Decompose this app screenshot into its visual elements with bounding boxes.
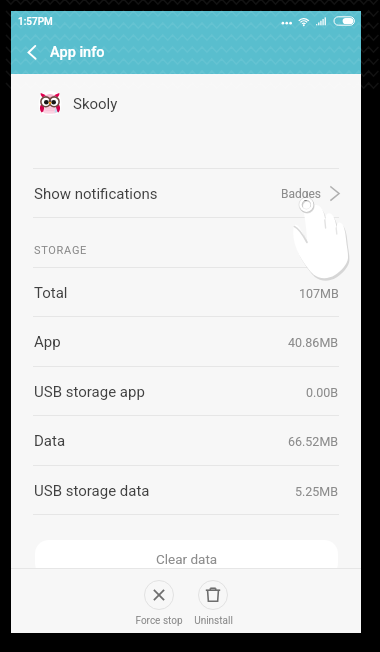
button[interactable]: App bbox=[11, 317, 361, 365]
staticText: STORAGE bbox=[34, 244, 88, 257]
other: Tap gesture bbox=[290, 195, 360, 289]
button[interactable]: Show notifications bbox=[11, 169, 361, 217]
staticText: 1:57PM bbox=[18, 16, 53, 28]
button[interactable]: Total bbox=[11, 268, 361, 316]
staticText: Data bbox=[34, 432, 66, 450]
staticText: 107MB bbox=[299, 286, 339, 301]
button[interactable]: Clear data bbox=[35, 540, 338, 577]
button[interactable]: Force stop bbox=[129, 573, 189, 631]
staticText: 0.00B bbox=[306, 385, 339, 400]
staticText: Clear data bbox=[156, 551, 218, 567]
button[interactable]: Uninstall bbox=[183, 573, 243, 631]
staticText: Force stop bbox=[135, 615, 183, 627]
staticText: 5.25MB bbox=[295, 484, 339, 499]
button[interactable]: USB storage data bbox=[11, 466, 361, 514]
staticText: Total bbox=[34, 284, 68, 302]
button[interactable]: Data bbox=[11, 416, 361, 464]
staticText: Uninstall bbox=[194, 615, 233, 627]
button[interactable]: Back bbox=[18, 36, 48, 64]
staticText: Skooly bbox=[73, 95, 118, 113]
button[interactable]: USB storage app bbox=[11, 367, 361, 415]
staticText: USB storage data bbox=[34, 482, 150, 500]
staticText: App bbox=[34, 333, 61, 351]
staticText: 40.86MB bbox=[288, 335, 339, 350]
staticText: Show notifications bbox=[34, 185, 158, 203]
staticText: 66.52MB bbox=[288, 434, 339, 449]
staticText: App info bbox=[50, 44, 105, 61]
staticText: USB storage app bbox=[34, 383, 145, 401]
staticText: Badges bbox=[281, 187, 322, 201]
